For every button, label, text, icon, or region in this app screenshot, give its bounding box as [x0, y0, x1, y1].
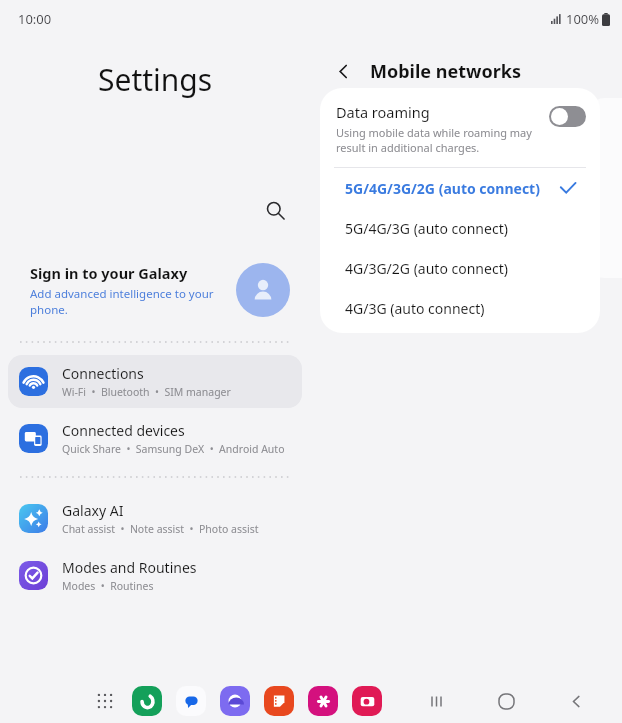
- staticText: 5G/4G/3G (auto connect): [345, 219, 577, 238]
- staticText: Quick Share • Samsung DeX • Android Auto: [62, 442, 285, 456]
- staticText: Modes • Routines: [62, 579, 154, 593]
- staticText: Connected devices: [62, 421, 185, 440]
- button[interactable]: 5G/4G/3G/2G (auto connect): [323, 168, 597, 208]
- staticText: Sign in to your Galaxy: [30, 263, 188, 283]
- staticText: Settings: [98, 59, 213, 100]
- button[interactable]: Phone: [132, 686, 162, 716]
- button[interactable]: Internet: [220, 686, 250, 716]
- button[interactable]: Sign in to your Galaxy: [0, 254, 310, 326]
- staticText: 4G/3G/2G (auto connect): [345, 259, 577, 278]
- button[interactable]: Recents: [420, 685, 452, 717]
- staticText: 10:00: [18, 10, 52, 28]
- staticText: Modes and Routines: [62, 558, 197, 577]
- button[interactable]: 5G/4G/3G (auto connect): [323, 208, 597, 248]
- button[interactable]: Home: [490, 685, 522, 717]
- button[interactable]: Back: [328, 56, 358, 86]
- button[interactable]: Back: [560, 685, 592, 717]
- button[interactable]: Apps: [90, 686, 120, 716]
- staticText: Using mobile data while roaming may resu…: [336, 125, 539, 155]
- button[interactable]: Messages: [176, 686, 206, 716]
- button[interactable]: Galaxy AI: [8, 492, 302, 545]
- staticText: Mobile networks: [370, 59, 521, 84]
- staticText: Add advanced intelligence to your phone.: [30, 286, 228, 317]
- button[interactable]: Modes and Routines: [8, 549, 302, 602]
- staticText: Chat assist • Note assist • Photo assist: [62, 522, 259, 536]
- button[interactable]: Connections: [8, 355, 302, 408]
- staticText: 5G/4G/3G/2G (auto connect): [345, 179, 559, 198]
- button[interactable]: Data roaming toggle: [549, 106, 586, 127]
- staticText: Connections: [62, 364, 144, 383]
- staticText: Galaxy AI: [62, 501, 124, 520]
- button[interactable]: Camera: [352, 686, 382, 716]
- button[interactable]: 4G/3G/2G (auto connect): [323, 248, 597, 288]
- button[interactable]: Connected devices: [8, 412, 302, 465]
- button[interactable]: Notes: [264, 686, 294, 716]
- staticText: Data roaming: [336, 102, 430, 122]
- staticText: Wi-Fi • Bluetooth • SIM manager: [62, 385, 231, 399]
- staticText: 100%: [566, 10, 600, 28]
- button[interactable]: Data roaming: [320, 88, 600, 167]
- button[interactable]: Search: [258, 193, 292, 227]
- button[interactable]: Gallery: [308, 686, 338, 716]
- staticText: 4G/3G (auto connect): [345, 299, 577, 318]
- button[interactable]: 4G/3G (auto connect): [323, 288, 597, 328]
